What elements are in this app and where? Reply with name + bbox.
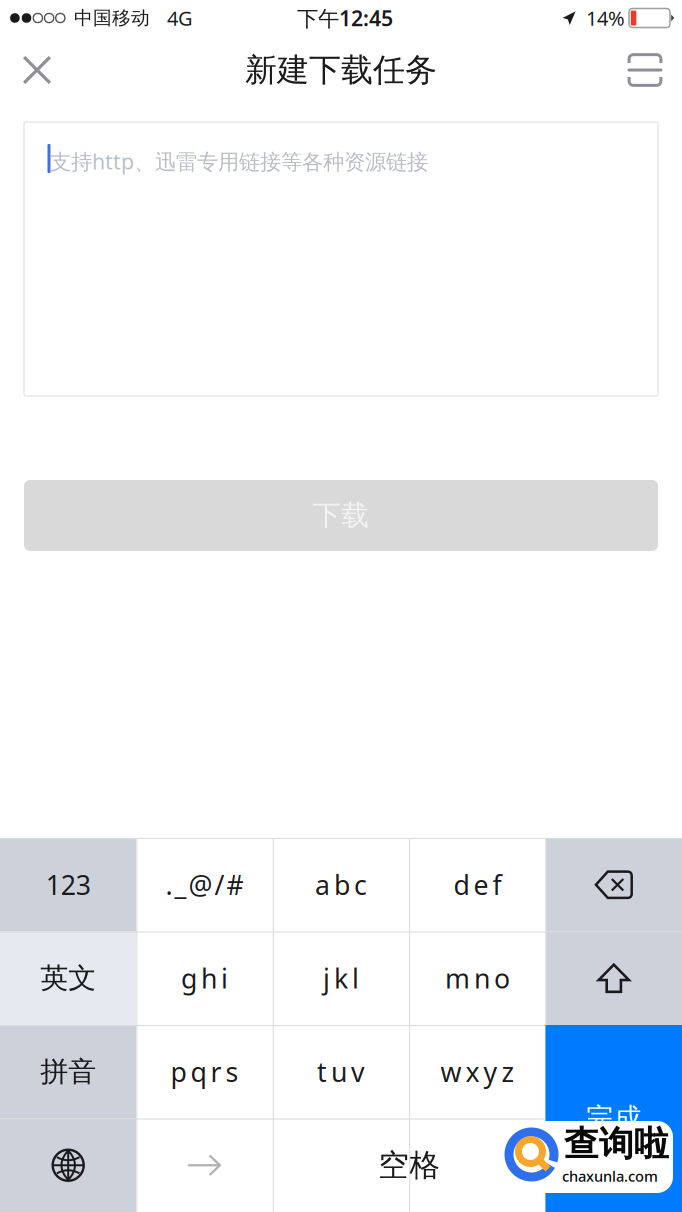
staticText: 新建下载任务	[245, 50, 437, 90]
button[interactable]: pqrs	[136, 1025, 273, 1118]
button[interactable]: ._@/#	[136, 838, 273, 931]
staticText: 完成	[586, 1101, 642, 1136]
staticText: pqrs	[171, 1054, 239, 1089]
button[interactable]: ghi	[136, 931, 273, 1025]
button[interactable]: jkl	[273, 931, 409, 1025]
staticText: mno	[445, 960, 510, 996]
staticText: 4G	[167, 5, 193, 31]
button[interactable]: 拼音	[0, 1025, 136, 1118]
button[interactable]: 上档	[546, 931, 682, 1025]
staticText: 14%	[586, 5, 625, 31]
staticText: 空格	[378, 1146, 440, 1184]
button[interactable]: 关闭	[7, 40, 67, 100]
staticText: wxyz	[440, 1054, 514, 1089]
staticText: abc	[315, 867, 367, 902]
button[interactable]: 扫描	[615, 40, 675, 100]
button[interactable]: 下一项	[136, 1118, 273, 1212]
button[interactable]: 英文	[0, 931, 136, 1025]
button[interactable]: 切换键盘	[0, 1118, 136, 1212]
button[interactable]: 空格	[273, 1118, 546, 1212]
button[interactable]: wxyz	[409, 1025, 546, 1118]
button[interactable]: mno	[409, 931, 546, 1025]
staticText: 支持http、迅雷专用链接等各种资源链接	[50, 147, 428, 175]
staticText: 123	[46, 867, 91, 902]
staticText: 英文	[40, 961, 96, 995]
staticText: chaxunla.com	[562, 1166, 658, 1186]
staticText: ghi	[181, 960, 228, 996]
staticText: 下载	[313, 498, 369, 533]
staticText: tuv	[317, 1054, 365, 1089]
staticText: 下午12:45	[297, 4, 393, 32]
staticText: 拼音	[40, 1055, 96, 1089]
button[interactable]: tuv	[273, 1025, 409, 1118]
staticText: 中国移动	[74, 6, 150, 29]
button[interactable]: abc	[273, 838, 409, 931]
button[interactable]: def	[409, 838, 546, 931]
button[interactable]: 删除	[546, 838, 682, 931]
staticText: 查询啦	[564, 1123, 669, 1165]
button[interactable]: 123	[0, 838, 136, 931]
staticText: def	[453, 867, 501, 902]
staticText: jkl	[323, 960, 359, 996]
staticText: ._@/#	[166, 867, 244, 902]
button[interactable]: 完成	[546, 1025, 682, 1212]
